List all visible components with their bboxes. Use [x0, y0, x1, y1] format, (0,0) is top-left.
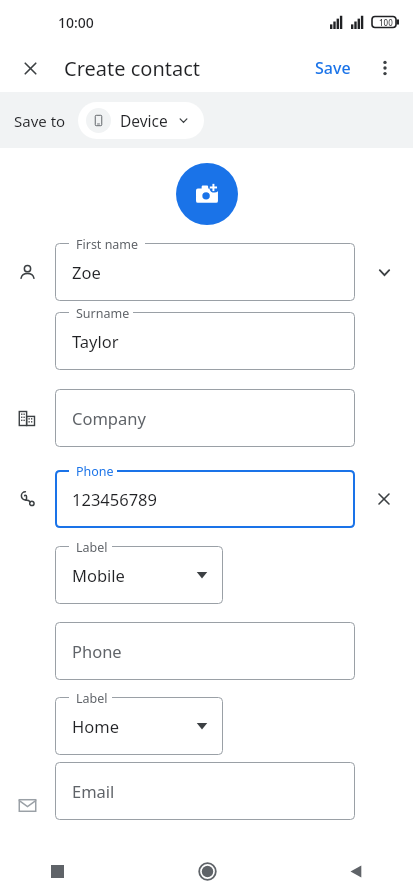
button[interactable]: More options [369, 52, 401, 84]
staticText: Phone [72, 640, 122, 662]
staticText: 100 [379, 17, 393, 28]
button[interactable]: Clear phone number [355, 458, 413, 539]
staticText: Device [120, 110, 168, 131]
button[interactable]: Label [55, 697, 223, 755]
staticText: Taylor [72, 330, 119, 352]
button[interactable]: Device [78, 102, 204, 139]
button[interactable]: Phone [55, 622, 355, 680]
button[interactable]: First name [55, 243, 355, 301]
staticText: Label [76, 690, 108, 707]
staticText: Label [76, 539, 108, 556]
staticText: Create contact [64, 55, 201, 82]
staticText: 10:00 [58, 13, 94, 32]
button[interactable]: Expand name fields [355, 240, 413, 304]
staticText: First name [76, 236, 139, 253]
button[interactable]: Phone [55, 470, 355, 528]
staticText: Home [72, 715, 119, 737]
staticText: Email [72, 780, 115, 802]
button[interactable]: Close [14, 52, 46, 84]
staticText: Save to [14, 111, 66, 131]
staticText: Phone [76, 463, 114, 480]
button[interactable]: Surname [55, 312, 355, 370]
staticText: Mobile [72, 564, 125, 586]
button[interactable]: Add photo [176, 163, 238, 225]
button[interactable]: Back [335, 850, 377, 892]
staticText: 123456789 [72, 488, 157, 510]
button[interactable]: Home [186, 850, 228, 892]
staticText: Surname [76, 305, 130, 322]
button[interactable]: Company [55, 389, 355, 447]
button[interactable]: Recent apps [36, 850, 78, 892]
staticText: Company [72, 407, 146, 429]
button[interactable]: Email [55, 762, 355, 820]
staticText: Save [315, 57, 351, 79]
staticText: Zoe [72, 261, 101, 283]
button[interactable]: Save [309, 51, 357, 85]
button[interactable]: Label [55, 546, 223, 604]
